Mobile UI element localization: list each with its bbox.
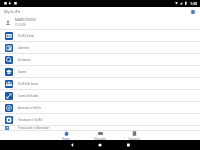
button[interactable]: Home <box>49 131 83 140</box>
staticText: 1:38 <box>190 1 198 6</box>
button[interactable]: Supporto <box>117 131 151 140</box>
staticText: Esami <box>18 70 27 74</box>
staticText: MARIO ROSSI <box>15 18 36 22</box>
button[interactable]: Corsi di Studio <box>0 90 200 101</box>
staticText: Supporto <box>128 137 140 140</box>
staticText: UniPa Card <box>18 34 34 38</box>
staticText: 0123456 <box>15 23 27 27</box>
button[interactable]: Esami <box>0 66 200 77</box>
button[interactable]: Strutture e UniPa <box>0 114 200 125</box>
button[interactable]: MARIO ROSSI <box>0 16 200 29</box>
button[interactable]: UniPa Orienta <box>0 78 200 89</box>
button[interactable]: Libretto <box>0 42 200 53</box>
staticText: MyUniPa <box>4 9 21 14</box>
button[interactable]: UniPa Card <box>0 30 200 41</box>
staticText: Trova aule e laboratori <box>18 126 50 130</box>
staticText: Iscrizioni <box>18 58 31 62</box>
staticText: Strutture e UniPa <box>18 118 43 122</box>
button[interactable]: Trova aule e laboratori <box>0 126 200 130</box>
button[interactable]: Messaggi <box>83 131 117 140</box>
button[interactable]: Settings <box>188 7 197 16</box>
button[interactable]: Accesso a UniPa <box>0 102 200 113</box>
staticText: Accesso a UniPa <box>18 106 41 110</box>
staticText: Home <box>62 137 70 140</box>
button[interactable]: Iscrizioni <box>0 54 200 65</box>
staticText: Libretto <box>18 46 30 50</box>
staticText: UniPa Orienta <box>18 82 38 86</box>
staticText: Messaggi <box>94 137 106 140</box>
staticText: Corsi di Studio <box>18 94 39 98</box>
